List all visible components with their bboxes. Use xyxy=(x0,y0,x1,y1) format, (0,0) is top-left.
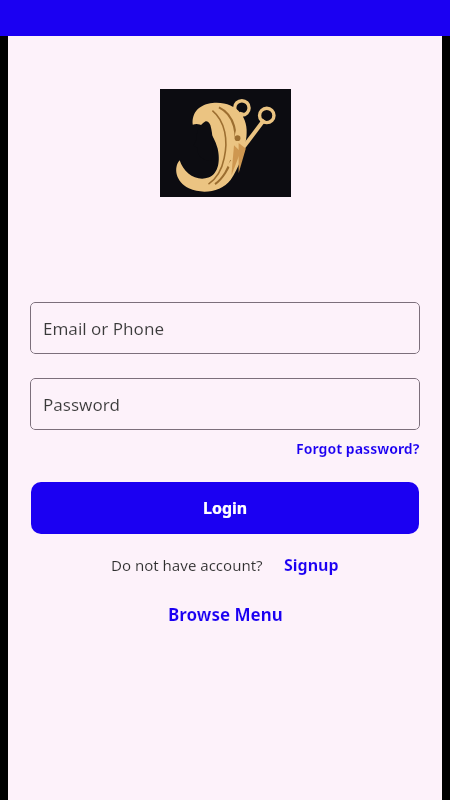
staticText: Do not have account? xyxy=(111,555,263,575)
button[interactable]: Login xyxy=(31,482,419,534)
button[interactable]: Forgot password? xyxy=(296,439,420,458)
staticText: Password xyxy=(43,393,120,416)
button[interactable]: Password xyxy=(30,378,420,430)
other: Salon logo xyxy=(160,89,291,197)
staticText: Signup xyxy=(284,554,339,576)
staticText: Forgot password? xyxy=(296,439,420,458)
button[interactable]: Browse Menu xyxy=(168,603,283,626)
staticText: Browse Menu xyxy=(168,603,283,626)
staticText: Login xyxy=(203,497,248,519)
button[interactable]: Email or Phone xyxy=(30,302,420,354)
button[interactable]: Signup xyxy=(284,554,339,576)
staticText: Email or Phone xyxy=(43,317,164,340)
